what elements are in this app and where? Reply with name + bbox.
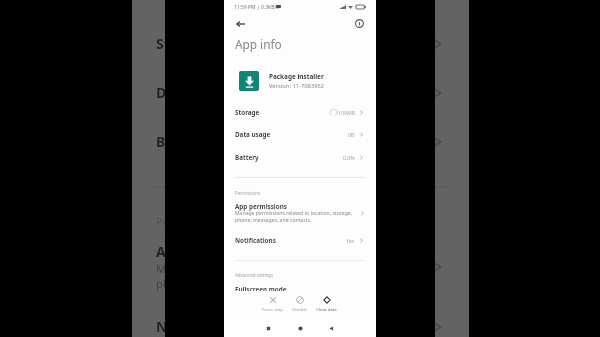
staticText: Version: 11-7083952 <box>269 82 325 90</box>
button[interactable]: Storage <box>132 19 469 68</box>
staticText: 11:59 PM | 0.3KB/s <box>234 4 279 11</box>
button[interactable]: App permissions <box>132 236 469 303</box>
staticText: Battery <box>235 153 259 162</box>
button[interactable]: Back <box>324 321 338 335</box>
staticText: Clear data <box>316 306 337 312</box>
staticText: Manage permissions related to location, … <box>156 261 416 276</box>
staticText: Data usage <box>235 130 271 139</box>
staticText: phone, messages, and contacts. <box>156 276 326 291</box>
button[interactable]: Data usage <box>224 123 376 145</box>
staticText: Storage <box>235 108 260 117</box>
button[interactable]: App permissions <box>224 199 376 229</box>
button[interactable]: Home <box>293 321 307 335</box>
staticText: App permissions <box>156 242 272 261</box>
staticText: App info <box>235 36 282 52</box>
button[interactable]: Back <box>233 16 248 31</box>
staticText: 109MB <box>338 109 355 116</box>
staticText: Notifications <box>235 236 276 245</box>
staticText: 0B <box>348 131 355 138</box>
button[interactable]: Clear data <box>312 291 340 313</box>
staticText: Permissions <box>235 190 260 196</box>
staticText: 0.0% <box>343 154 355 161</box>
button[interactable]: Force stop <box>258 291 286 313</box>
button[interactable]: Battery <box>224 146 376 168</box>
staticText: Manage permissions related to location, … <box>235 210 353 217</box>
button[interactable]: Notifications <box>132 302 469 337</box>
button[interactable]: Notifications <box>224 229 376 251</box>
staticText: Battery <box>156 132 209 151</box>
button[interactable]: Disable <box>285 291 313 313</box>
staticText: Disable <box>292 306 307 312</box>
staticText: Data usage <box>156 83 235 102</box>
staticText: Yes <box>346 237 355 244</box>
staticText: App permissions <box>235 202 287 211</box>
button[interactable]: Recents <box>261 321 275 335</box>
button[interactable]: App details <box>352 16 367 31</box>
staticText: Notifications <box>156 317 247 336</box>
staticText: phone, messages, and contacts. <box>235 217 312 224</box>
staticText: Force stop <box>262 306 283 312</box>
button[interactable]: Data usage <box>132 68 469 117</box>
button[interactable]: Battery <box>132 117 469 166</box>
staticText: Permissions <box>156 215 212 228</box>
staticText: Advanced settings <box>235 272 274 278</box>
button[interactable]: Storage <box>224 101 376 123</box>
staticText: Storage <box>156 34 211 53</box>
staticText: Fullscreen mode <box>235 285 287 294</box>
staticText: Package installer <box>269 72 324 81</box>
